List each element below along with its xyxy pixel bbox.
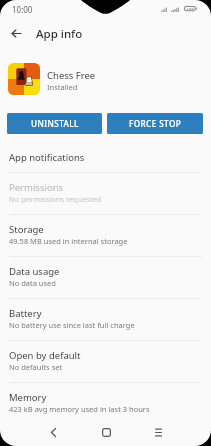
staticText: No battery use since last full charge — [9, 320, 135, 330]
button[interactable]: Storage — [0, 215, 211, 256]
button[interactable]: Chess Free — [0, 48, 211, 110]
button[interactable]: Permissions — [0, 173, 211, 214]
staticText: 10:00 — [12, 4, 33, 15]
button[interactable]: Navigate up — [4, 21, 29, 46]
staticText: Battery — [9, 307, 42, 320]
button[interactable]: Battery — [0, 299, 211, 340]
button[interactable]: Open by default — [0, 341, 211, 382]
button[interactable]: Memory — [0, 383, 211, 424]
button[interactable]: UNINSTALL — [7, 113, 102, 134]
staticText: No data used — [9, 278, 56, 288]
button[interactable]: Recent apps — [145, 421, 171, 443]
staticText: UNINSTALL — [31, 118, 79, 129]
staticText: App notifications — [9, 151, 85, 164]
button[interactable]: Data usage — [0, 257, 211, 298]
button[interactable]: FORCE STOP — [107, 113, 203, 134]
staticText: FORCE STOP — [129, 118, 182, 129]
staticText: 49.58 MB used in internal storage — [9, 236, 128, 246]
button[interactable]: Back — [40, 421, 66, 443]
staticText: No permissions requested — [9, 194, 102, 204]
staticText: Chess Free — [47, 69, 96, 82]
staticText: Data usage — [9, 265, 60, 278]
staticText: Memory — [9, 391, 47, 404]
staticText: App info — [36, 26, 83, 42]
button[interactable]: Home — [93, 421, 119, 443]
button[interactable]: App notifications — [0, 142, 211, 172]
staticText: Installed — [47, 82, 78, 92]
staticText: Open by default — [9, 349, 81, 362]
staticText: Permissions — [9, 181, 64, 194]
staticText: Storage — [9, 223, 44, 236]
staticText: No defaults set — [9, 362, 63, 372]
staticText: 423 kB avg memory used in last 3 hours — [9, 404, 150, 414]
